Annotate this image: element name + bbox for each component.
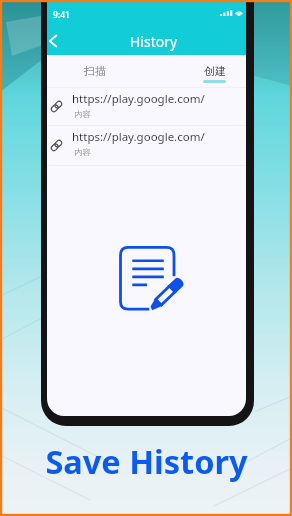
- staticText: 扫描: [84, 64, 106, 78]
- staticText: 内容: [74, 147, 91, 157]
- staticText: https://play.google.com/: [72, 91, 205, 107]
- staticText: 内容: [74, 109, 91, 119]
- staticText: History: [130, 32, 178, 51]
- staticText: https://play.google.com/: [72, 129, 205, 145]
- button[interactable]: https://play.google.com/: [47, 88, 246, 125]
- staticText: Save History: [45, 439, 248, 483]
- button[interactable]: 扫描: [66, 55, 123, 87]
- button[interactable]: Back: [47, 25, 65, 57]
- staticText: 创建: [204, 64, 226, 78]
- staticText: 9:41: [53, 9, 70, 21]
- button[interactable]: https://play.google.com/: [47, 126, 246, 165]
- button[interactable]: 创建: [186, 55, 243, 87]
